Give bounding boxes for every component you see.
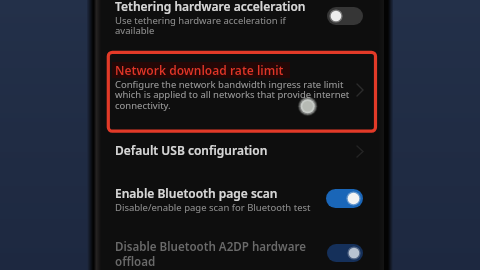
staticText: Network download rate limit bbox=[115, 62, 284, 78]
other: Open bbox=[357, 146, 363, 157]
staticText: Configure the network bandwidth ingress … bbox=[115, 78, 350, 112]
button[interactable]: Disable Bluetooth A2DP hardware offload … bbox=[327, 244, 363, 262]
staticText: Tethering hardware acceleration bbox=[115, 0, 306, 14]
button[interactable] bbox=[96, 52, 383, 130]
button[interactable]: Tethering hardware acceleration toggle bbox=[327, 7, 363, 25]
button[interactable] bbox=[96, 232, 383, 270]
staticText: Default USB configuration bbox=[115, 142, 268, 158]
button[interactable] bbox=[96, 0, 383, 41]
button[interactable] bbox=[96, 178, 383, 218]
staticText: Disable/enable page scan for Bluetooth t… bbox=[115, 201, 311, 214]
staticText: Disable Bluetooth A2DP hardware offload bbox=[115, 239, 307, 270]
other: Open bbox=[357, 84, 363, 96]
staticText: Use tethering hardware acceleration if a… bbox=[115, 14, 286, 37]
staticText: Enable Bluetooth page scan bbox=[115, 185, 278, 201]
button[interactable] bbox=[96, 134, 383, 170]
button[interactable]: Enable Bluetooth page scan toggle bbox=[326, 189, 363, 208]
